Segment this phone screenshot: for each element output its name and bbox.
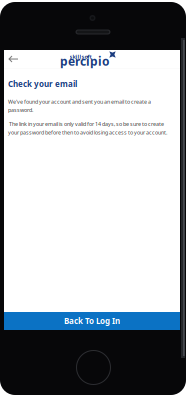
staticText: We've found your account and sent you an… — [8, 98, 151, 113]
staticText: Check your email — [8, 78, 77, 89]
staticText: Back To Log In — [64, 316, 120, 326]
staticText: skillsoft — [69, 53, 91, 60]
staticText: The link in your email is only valid for… — [8, 120, 167, 136]
button[interactable]: Back To Log In — [4, 312, 180, 330]
button[interactable]: Back — [4, 50, 24, 68]
staticText: percipio — [60, 53, 110, 69]
